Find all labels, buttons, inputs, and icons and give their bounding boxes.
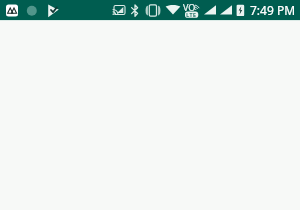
staticText: VO bbox=[183, 1, 196, 13]
staticText: LTE bbox=[186, 11, 197, 19]
staticText: 7:49 PM bbox=[250, 2, 296, 18]
button[interactable]: Status bar bbox=[0, 0, 300, 20]
